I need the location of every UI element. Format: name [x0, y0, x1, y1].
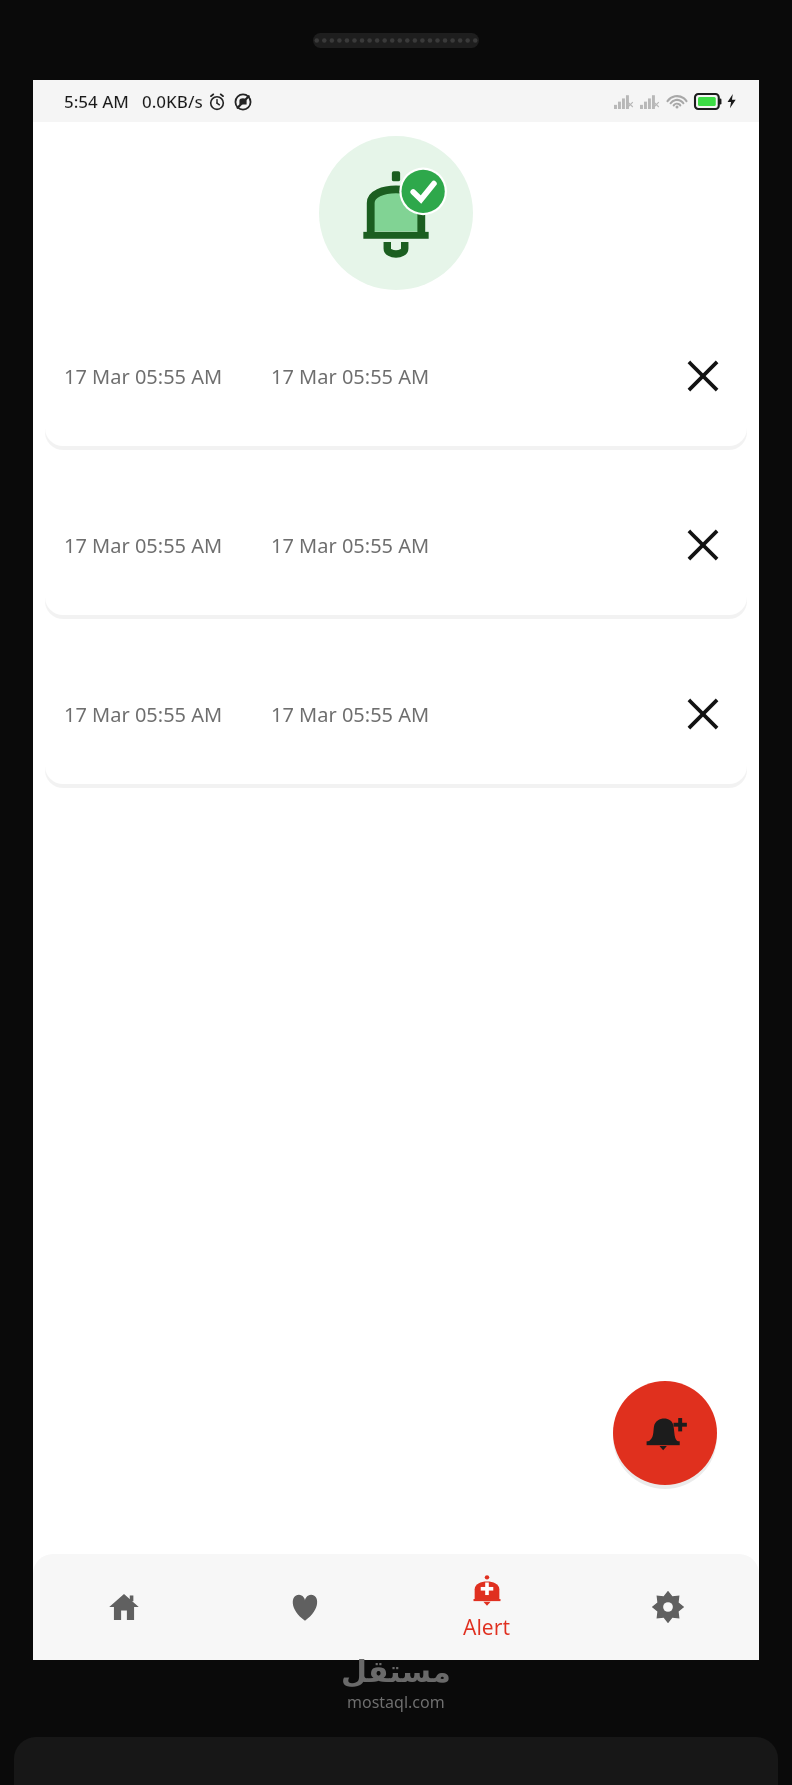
staticText: mostaql.com	[347, 1691, 445, 1713]
button[interactable]: Delete alert	[680, 691, 726, 737]
staticText: 17 Mar 05:55 AM	[271, 363, 430, 390]
button[interactable]: Add alert	[613, 1381, 717, 1485]
button[interactable]: Home	[33, 1554, 214, 1660]
button[interactable]: Settings	[577, 1554, 759, 1660]
staticText: 17 Mar 05:55 AM	[64, 532, 223, 559]
button[interactable]: Favorites	[214, 1554, 395, 1660]
button[interactable]: Alert	[395, 1554, 577, 1660]
staticText: 17 Mar 05:55 AM	[271, 532, 430, 559]
staticText: Alert	[463, 1613, 510, 1642]
staticText: 17 Mar 05:55 AM	[64, 363, 223, 390]
staticText: 17 Mar 05:55 AM	[271, 701, 430, 728]
button[interactable]: 17 Mar 05:55 AM	[45, 306, 747, 446]
staticText: 0.0KB/s	[142, 90, 203, 113]
button[interactable]: 17 Mar 05:55 AM	[45, 644, 747, 784]
button[interactable]: Delete alert	[680, 522, 726, 568]
staticText: مستقل	[341, 1654, 451, 1689]
staticText: 17 Mar 05:55 AM	[64, 701, 223, 728]
staticText: 5:54 AM	[64, 90, 129, 113]
button[interactable]: Delete alert	[680, 353, 726, 399]
button[interactable]: 17 Mar 05:55 AM	[45, 475, 747, 615]
